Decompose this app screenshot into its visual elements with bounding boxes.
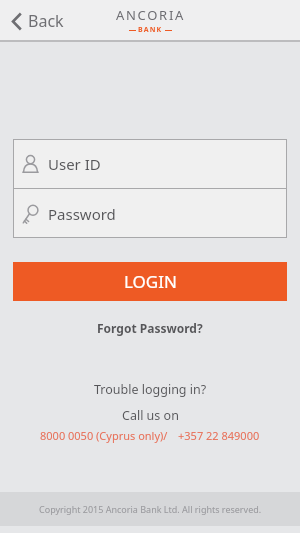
button[interactable]: Password: [13, 189, 287, 238]
staticText: Call us on: [122, 407, 179, 424]
button[interactable]: User ID: [13, 139, 287, 188]
staticText: ANCORIA: [116, 6, 185, 24]
staticText: Copyright 2015 Ancoria Bank Ltd. All rig…: [39, 503, 262, 515]
staticText: BANK: [138, 25, 163, 35]
staticText: Forgot Password?: [97, 320, 203, 336]
button[interactable]: LOGIN: [13, 262, 287, 301]
staticText: 8000 0050 (Cyprus only)/: [40, 428, 168, 443]
staticText: User ID: [48, 154, 101, 174]
staticText: +357 22 849000: [178, 428, 260, 443]
button[interactable]: +357 22 849000: [178, 428, 260, 443]
staticText: Trouble logging in?: [94, 381, 207, 398]
button[interactable]: 8000 0050 (Cyprus only)/: [40, 428, 168, 443]
button[interactable]: Forgot Password?: [87, 315, 213, 341]
staticText: Back: [28, 10, 64, 32]
staticText: Password: [48, 204, 116, 224]
staticText: LOGIN: [124, 270, 177, 293]
button[interactable]: Back: [0, 4, 76, 38]
